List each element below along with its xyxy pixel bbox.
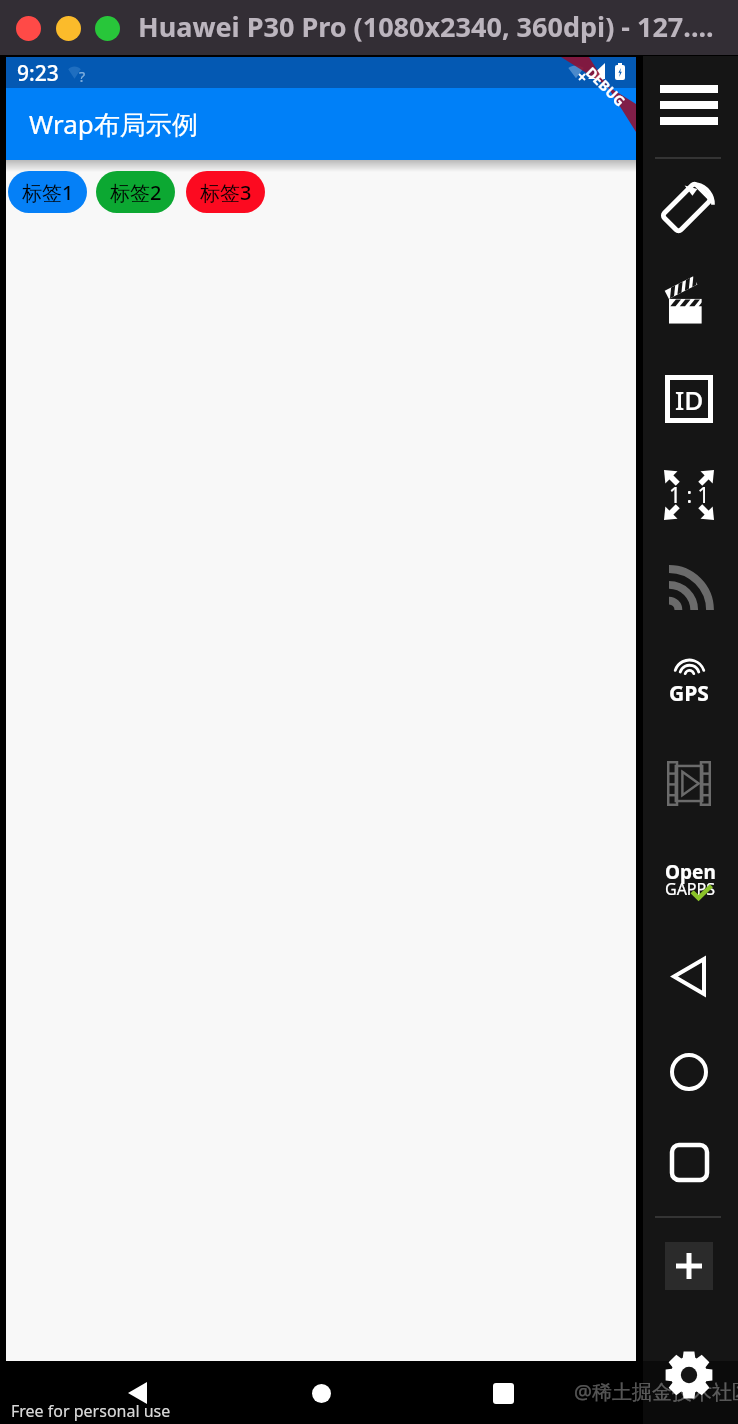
button[interactable]: Back (653, 940, 725, 1012)
staticText: GAPPS (665, 878, 716, 900)
staticText: Open (665, 859, 716, 885)
button[interactable]: GPS (653, 648, 725, 720)
staticText: GPS (669, 679, 709, 708)
button[interactable]: Recents (653, 1126, 725, 1198)
button[interactable]: Back (112, 1368, 162, 1418)
button[interactable]: Minimise (56, 16, 81, 41)
staticText: Huawei P30 Pro (1080x2340, 360dpi) - 127… (138, 8, 714, 45)
button[interactable]: Zoom 1:1 (653, 459, 725, 531)
staticText: DEBUG (582, 63, 630, 111)
button[interactable]: Open GAPPS (653, 845, 725, 917)
button[interactable]: 标签2 (96, 171, 175, 213)
button[interactable]: Cast (653, 553, 725, 625)
button[interactable]: Screenshot (653, 265, 725, 337)
button[interactable]: Recents (478, 1368, 528, 1418)
staticText: Free for personal use (11, 1400, 171, 1422)
staticText: 9:23 (17, 59, 59, 88)
button[interactable]: 标签3 (186, 171, 265, 213)
staticText: @稀土掘金技术社区 (574, 1378, 738, 1405)
button[interactable]: Settings (653, 1339, 725, 1411)
button[interactable]: Record (653, 747, 725, 819)
button[interactable]: Rotate (653, 171, 725, 243)
button[interactable]: Home (653, 1036, 725, 1108)
staticText: ID (675, 382, 704, 417)
button[interactable]: Close (16, 16, 41, 41)
staticText: ? (79, 67, 86, 86)
staticText: Wrap布局示例 (29, 106, 198, 142)
button[interactable]: 标签1 (8, 171, 87, 213)
staticText: 标签2 (110, 179, 162, 206)
staticText: 1 : 1 (669, 481, 710, 510)
button[interactable]: Add (653, 1230, 725, 1302)
staticText: 标签3 (200, 179, 252, 206)
button[interactable]: Maximise (95, 16, 120, 41)
staticText: 标签1 (22, 179, 74, 206)
button[interactable]: Menu (653, 69, 725, 141)
button[interactable]: Device ID (653, 363, 725, 435)
button[interactable]: Home (296, 1368, 346, 1418)
